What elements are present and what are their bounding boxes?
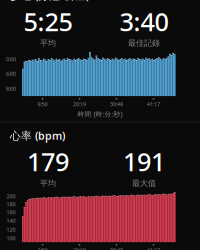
staticText: 160 xyxy=(6,209,15,216)
staticText: 時間 (時:分:秒) xyxy=(77,110,122,118)
staticText: 8:00 xyxy=(6,85,16,92)
staticText: 心率 (bpm) xyxy=(10,128,65,143)
staticText: 最大值 xyxy=(132,178,156,188)
staticText: 平均 xyxy=(40,38,56,48)
staticText: 41:17 xyxy=(147,247,160,250)
staticText: 200 xyxy=(6,193,15,200)
staticText: 0:00 xyxy=(6,55,16,63)
staticText: 30:48 xyxy=(110,247,123,250)
staticText: 9:50 xyxy=(37,101,47,108)
staticText: 9:50 xyxy=(37,247,47,250)
staticText: 30:48 xyxy=(110,101,123,108)
staticText: 6:00 xyxy=(6,70,16,77)
staticText: 平均 xyxy=(40,178,56,188)
staticText: 20:19 xyxy=(73,101,86,108)
staticText: 120 xyxy=(6,226,15,233)
staticText: 179 xyxy=(27,145,69,178)
staticText: 20:19 xyxy=(73,247,86,250)
staticText: 3:40 xyxy=(119,5,168,38)
staticText: 100 xyxy=(6,235,15,242)
staticText: 最佳記錄 xyxy=(128,38,160,48)
staticText: 41:17 xyxy=(147,101,160,108)
staticText: 步速 (分鐘/公里) xyxy=(10,0,89,3)
staticText: 180 xyxy=(6,201,15,208)
staticText: 191 xyxy=(123,145,165,178)
staticText: 140 xyxy=(6,217,15,224)
staticText: 5:25 xyxy=(23,5,72,38)
